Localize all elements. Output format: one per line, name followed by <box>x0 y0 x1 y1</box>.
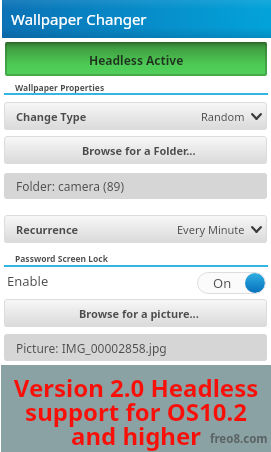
button[interactable]: Headless Active <box>5 42 267 76</box>
staticText: On <box>213 274 232 292</box>
button[interactable]: Recurrence <box>4 215 267 243</box>
staticText: Random <box>201 109 245 124</box>
staticText: Folder: camera (89) <box>16 178 125 194</box>
staticText: Wallpaper Changer <box>11 9 147 29</box>
staticText: Version 2.0 Headless <box>1 371 271 404</box>
staticText: Change Type <box>16 109 87 124</box>
button[interactable]: Browse for a Folder... <box>4 136 267 164</box>
staticText: Picture: IMG_00002858.jpg <box>16 340 167 356</box>
staticText: Recurrence <box>16 222 79 237</box>
button[interactable]: Wallpaper Changer <box>2 0 271 38</box>
staticText: Every Minute <box>177 222 245 237</box>
staticText: Headless Active <box>89 52 184 68</box>
button[interactable]: Browse for a picture... <box>4 299 267 327</box>
button[interactable]: Change Type <box>4 102 267 130</box>
staticText: and higher <box>1 419 271 452</box>
staticText: Browse for a Folder... <box>82 143 196 158</box>
staticText: Password Screen Lock <box>15 253 109 265</box>
staticText: support for OS10.2 <box>1 395 271 428</box>
button[interactable]: Toggle password screen lock <box>197 272 266 294</box>
staticText: Enable <box>7 272 49 290</box>
staticText: Wallpaper Properties <box>15 82 105 94</box>
staticText: freo8.com <box>210 431 268 447</box>
staticText: Browse for a picture... <box>79 306 199 321</box>
